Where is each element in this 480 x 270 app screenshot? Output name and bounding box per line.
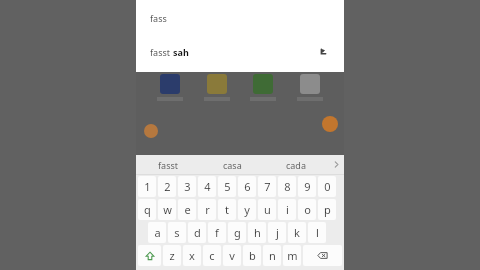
staticText: 6: [244, 179, 251, 194]
button[interactable]: [253, 74, 273, 94]
button[interactable]: w: [158, 199, 176, 220]
staticText: 8: [284, 179, 291, 194]
staticText: i: [286, 202, 289, 217]
button[interactable]: b: [243, 245, 261, 266]
staticText: f: [215, 225, 219, 240]
staticText: q: [144, 202, 151, 217]
staticText: 0: [324, 179, 331, 194]
button[interactable]: 5: [218, 176, 236, 197]
staticText: 3: [184, 179, 191, 194]
staticText: fasst: [150, 46, 173, 58]
staticText: fasst: [158, 159, 179, 171]
staticText: x: [189, 248, 195, 263]
staticText: r: [205, 202, 210, 217]
button[interactable]: [207, 74, 227, 94]
button[interactable]: c: [203, 245, 221, 266]
button[interactable]: 9: [298, 176, 316, 197]
button[interactable]: casa: [200, 155, 264, 174]
button[interactable]: 0: [318, 176, 336, 197]
button[interactable]: 7: [258, 176, 276, 197]
staticText: v: [229, 248, 235, 263]
button[interactable]: cada: [264, 155, 328, 174]
staticText: fass: [150, 12, 167, 24]
staticText: w: [163, 202, 172, 217]
staticText: sah: [173, 46, 189, 58]
button[interactable]: v: [223, 245, 241, 266]
button[interactable]: r: [198, 199, 216, 220]
button[interactable]: y: [238, 199, 256, 220]
button[interactable]: u: [258, 199, 276, 220]
staticText: c: [209, 248, 215, 263]
staticText: g: [234, 225, 241, 240]
button[interactable]: 3: [178, 176, 196, 197]
button[interactable]: t: [218, 199, 236, 220]
button[interactable]: h: [248, 222, 266, 243]
staticText: 5: [224, 179, 231, 194]
button[interactable]: d: [188, 222, 206, 243]
button[interactable]: fasst: [136, 34, 344, 70]
staticText: a: [154, 225, 161, 240]
staticText: 9: [304, 179, 311, 194]
button[interactable]: a: [148, 222, 166, 243]
staticText: k: [294, 225, 300, 240]
staticText: h: [254, 225, 261, 240]
button[interactable]: i: [278, 199, 296, 220]
button[interactable]: Shift: [138, 245, 161, 266]
staticText: y: [244, 202, 250, 217]
button[interactable]: More suggestions: [328, 155, 344, 174]
button[interactable]: [300, 74, 320, 94]
button[interactable]: 6: [238, 176, 256, 197]
staticText: l: [316, 225, 319, 240]
staticText: 7: [264, 179, 271, 194]
staticText: n: [269, 248, 276, 263]
button[interactable]: s: [168, 222, 186, 243]
button[interactable]: [160, 74, 180, 94]
staticText: z: [169, 248, 175, 263]
button[interactable]: j: [268, 222, 286, 243]
button[interactable]: Insert suggestion: [316, 43, 334, 61]
button[interactable]: q: [138, 199, 156, 220]
button[interactable]: m: [283, 245, 301, 266]
staticText: t: [225, 202, 229, 217]
button[interactable]: x: [183, 245, 201, 266]
button[interactable]: 2: [158, 176, 176, 197]
button[interactable]: n: [263, 245, 281, 266]
staticText: o: [304, 202, 311, 217]
button[interactable]: z: [163, 245, 181, 266]
staticText: m: [287, 248, 298, 263]
staticText: 4: [204, 179, 211, 194]
staticText: j: [276, 225, 279, 240]
staticText: b: [249, 248, 256, 263]
button[interactable]: Backspace: [303, 245, 342, 266]
button[interactable]: 1: [138, 176, 156, 197]
button[interactable]: 8: [278, 176, 296, 197]
button[interactable]: o: [298, 199, 316, 220]
button[interactable]: fass: [136, 2, 344, 34]
button[interactable]: k: [288, 222, 306, 243]
staticText: 1: [144, 179, 151, 194]
button[interactable]: g: [228, 222, 246, 243]
staticText: casa: [223, 159, 242, 171]
button[interactable]: p: [318, 199, 336, 220]
button[interactable]: l: [308, 222, 326, 243]
staticText: u: [264, 202, 271, 217]
staticText: 2: [164, 179, 171, 194]
button[interactable]: fasst: [136, 155, 200, 174]
staticText: d: [194, 225, 201, 240]
staticText: p: [324, 202, 331, 217]
staticText: s: [174, 225, 180, 240]
button[interactable]: f: [208, 222, 226, 243]
button[interactable]: e: [178, 199, 196, 220]
staticText: e: [184, 202, 191, 217]
staticText: cada: [286, 159, 306, 171]
button[interactable]: 4: [198, 176, 216, 197]
